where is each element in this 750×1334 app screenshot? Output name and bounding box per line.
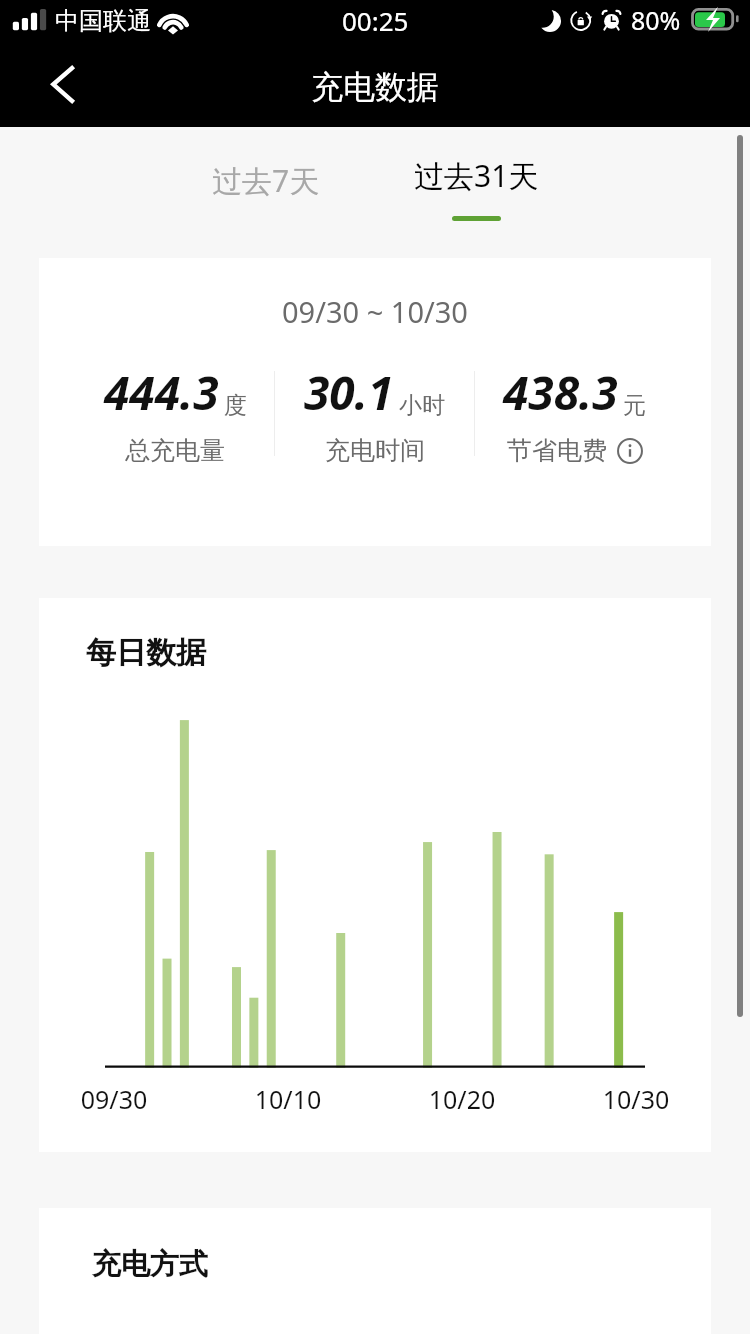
- staticText: 00:25: [342, 3, 409, 38]
- staticText: 总充电量: [125, 435, 225, 466]
- button[interactable]: Info: [617, 438, 643, 464]
- staticText: 过去31天: [414, 155, 539, 196]
- button[interactable]: Back: [25, 53, 85, 123]
- staticText: 10/20: [422, 1082, 502, 1116]
- staticText: 10/30: [596, 1082, 676, 1116]
- button[interactable]: 过去7天: [186, 150, 346, 210]
- staticText: 过去7天: [212, 160, 320, 201]
- staticText: 充电方式: [92, 1246, 208, 1283]
- staticText: 小时: [399, 391, 445, 420]
- staticText: 30.1: [304, 361, 394, 424]
- staticText: 80%: [631, 3, 681, 37]
- staticText: 节省电费: [507, 435, 607, 466]
- staticText: 09/30: [74, 1082, 154, 1116]
- button[interactable]: 过去31天: [396, 150, 556, 221]
- staticText: 度: [224, 391, 247, 420]
- staticText: 充电时间: [325, 435, 425, 466]
- staticText: 中国联通: [55, 6, 151, 36]
- staticText: 444.3: [104, 361, 219, 424]
- staticText: 438.3: [503, 361, 618, 424]
- staticText: 09/30 ~ 10/30: [282, 292, 468, 331]
- staticText: 10/10: [248, 1082, 328, 1116]
- staticText: 每日数据: [86, 634, 206, 672]
- staticText: 充电数据: [311, 67, 439, 107]
- staticText: 元: [623, 391, 646, 420]
